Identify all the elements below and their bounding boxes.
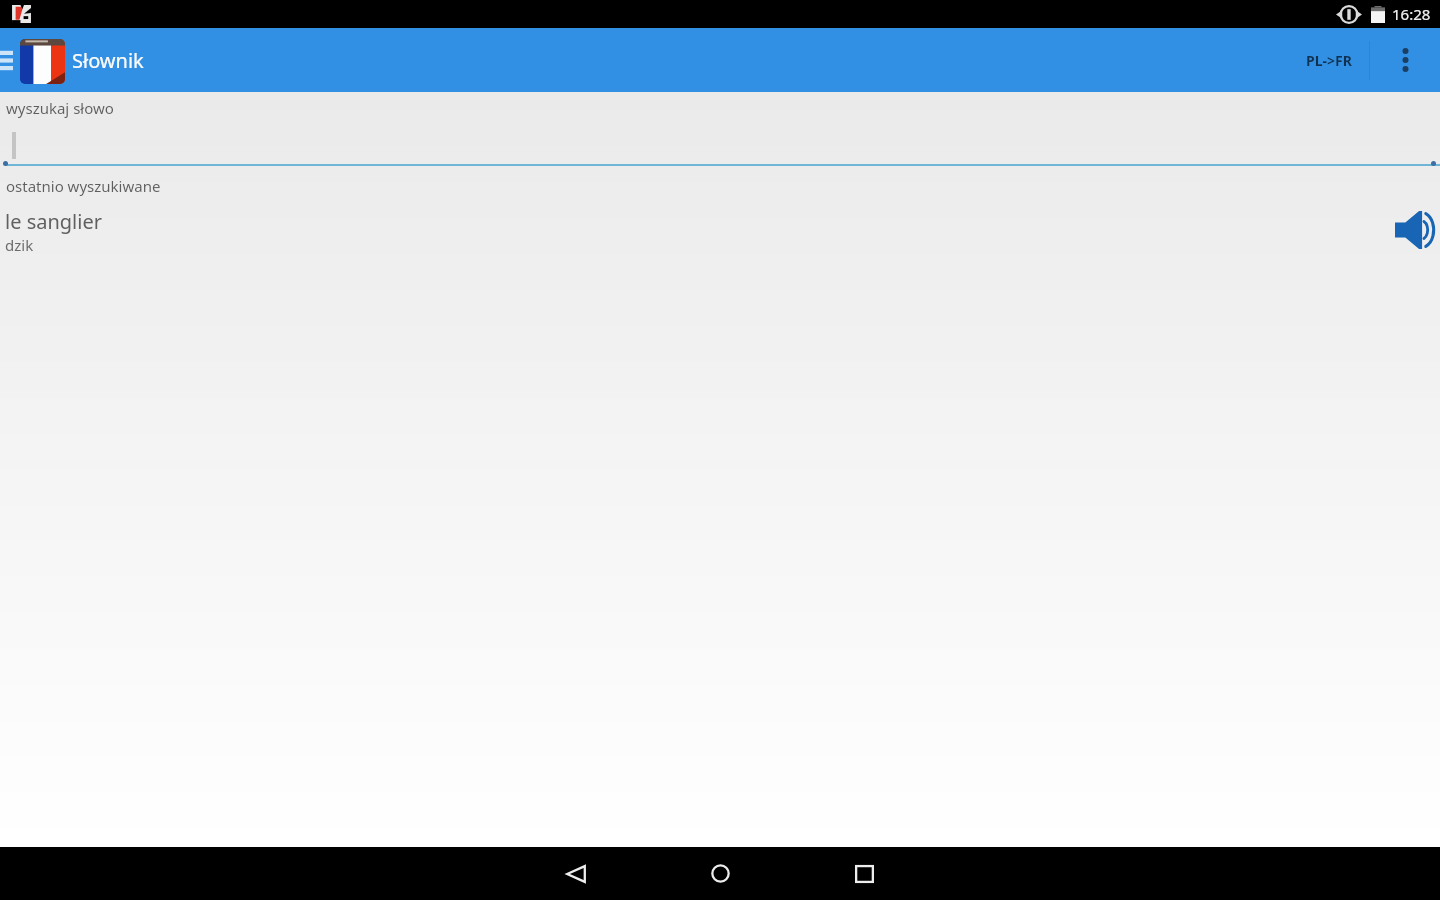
- button[interactable]: Play pronunciation: [1390, 204, 1440, 256]
- staticText: le sanglier: [5, 208, 102, 235]
- staticText: dzik: [5, 235, 34, 255]
- button[interactable]: le sanglier: [0, 202, 1440, 258]
- button[interactable]: Language flag: [20, 39, 65, 84]
- button[interactable]: PL->FR: [1296, 28, 1366, 92]
- button[interactable]: Recent apps: [810, 847, 918, 900]
- button[interactable]: More options: [1370, 28, 1440, 92]
- staticText: PL->FR: [1306, 51, 1352, 70]
- staticText: ostatnio wyszukiwane: [6, 176, 161, 196]
- button[interactable]: Home: [666, 847, 774, 900]
- staticText: 16:28: [1392, 4, 1431, 24]
- button[interactable]: [0, 128, 1440, 166]
- button[interactable]: Back: [522, 847, 630, 900]
- button[interactable]: Open navigation menu: [0, 36, 13, 84]
- staticText: wyszukaj słowo: [6, 98, 114, 118]
- staticText: Słownik: [72, 47, 144, 74]
